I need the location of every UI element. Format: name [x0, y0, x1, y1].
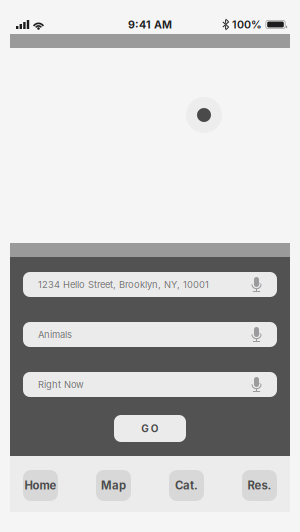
staticText: Map	[101, 479, 126, 492]
staticText: Cat.	[175, 479, 198, 492]
button[interactable]: Res.	[242, 470, 277, 501]
staticText: Right Now	[38, 379, 84, 390]
staticText: GO	[141, 422, 159, 435]
button[interactable]: Animals	[23, 322, 277, 347]
button[interactable]: Cat.	[169, 470, 204, 501]
button[interactable]: Home	[23, 470, 58, 501]
button[interactable]: 1234 Hello Street, Brooklyn, NY, 10001	[23, 272, 277, 297]
button[interactable]: Map	[96, 470, 131, 501]
staticText: 1234 Hello Street, Brooklyn, NY, 10001	[38, 279, 209, 290]
staticText: 100%	[232, 18, 262, 31]
staticText: Home	[24, 479, 56, 492]
staticText: Animals	[38, 329, 72, 340]
staticText: 9:41 AM	[128, 18, 172, 31]
button[interactable]: GO	[114, 415, 186, 442]
button[interactable]: Right Now	[23, 372, 277, 397]
staticText: Res.	[247, 479, 271, 492]
